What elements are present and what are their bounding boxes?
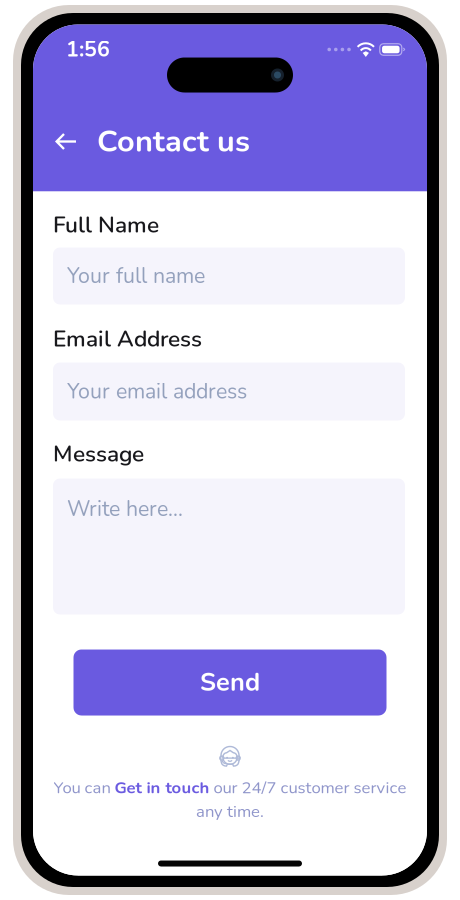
staticText: Write here...: [67, 494, 183, 524]
staticText: 1:56: [66, 35, 110, 64]
staticText: You can: [53, 776, 114, 799]
staticText: Get in touch: [114, 776, 209, 799]
staticText: Send: [200, 665, 260, 700]
staticText: Email Address: [53, 323, 202, 354]
staticText: Contact us: [97, 121, 250, 162]
staticText: Full Name: [53, 209, 159, 240]
staticText: Message: [53, 438, 144, 469]
staticText: Your full name: [67, 261, 205, 291]
button[interactable]: Send: [73, 649, 386, 715]
staticText: Your email address: [67, 377, 247, 406]
button[interactable]: Back: [46, 122, 86, 160]
staticText: any time.: [196, 800, 264, 823]
staticText: our 24/7 customer service: [209, 776, 406, 799]
